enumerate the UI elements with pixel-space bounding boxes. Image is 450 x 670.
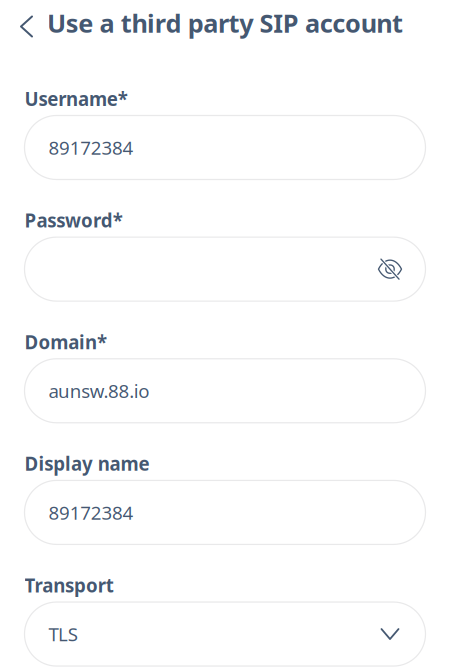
staticText: Username* xyxy=(24,86,128,111)
staticText: 89172384 xyxy=(48,500,134,525)
button[interactable]: Password* xyxy=(24,237,425,301)
button[interactable]: Transport, TLS xyxy=(24,602,425,666)
staticText: Transport xyxy=(24,573,114,598)
staticText: TLS xyxy=(48,622,78,646)
staticText: Display name xyxy=(24,451,149,476)
button[interactable]: Choose transport xyxy=(376,617,407,651)
staticText: Use a third party SIP account xyxy=(47,6,403,40)
button[interactable]: Domain*, aunsw.88.io xyxy=(24,359,425,423)
staticText: aunsw.88.io xyxy=(48,378,149,403)
button[interactable]: Show password xyxy=(372,252,407,287)
staticText: 89172384 xyxy=(48,135,134,160)
staticText: Password* xyxy=(24,208,123,233)
button[interactable]: Back xyxy=(0,0,47,45)
staticText: Domain* xyxy=(24,330,107,354)
button[interactable]: Username*, 89172384 xyxy=(24,115,425,179)
button[interactable]: Display name, 89172384 xyxy=(24,480,425,544)
